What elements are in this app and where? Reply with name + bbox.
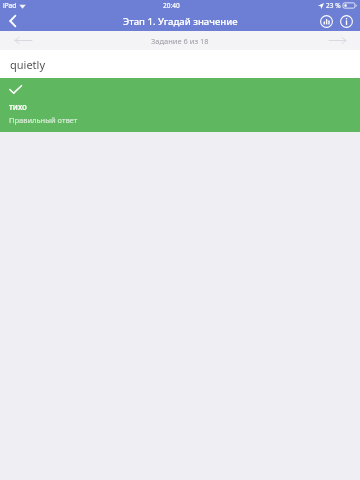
button[interactable]: тихо <box>0 78 360 132</box>
staticText: Этап 1. Угадай значение <box>123 15 238 28</box>
staticText: 23 % <box>326 1 341 10</box>
button[interactable]: Statistics <box>318 13 335 30</box>
staticText: quietly <box>10 57 46 72</box>
button[interactable]: Previous task <box>0 31 46 50</box>
staticText: Правильный ответ <box>9 115 78 125</box>
button[interactable]: Info <box>338 13 355 30</box>
staticText: Задание 6 из 18 <box>151 36 209 46</box>
staticText: тихо <box>9 101 27 112</box>
staticText: iPad <box>3 1 17 10</box>
button[interactable]: Back <box>0 11 26 31</box>
staticText: 20:40 <box>163 1 180 10</box>
button[interactable]: Next task <box>314 31 360 50</box>
